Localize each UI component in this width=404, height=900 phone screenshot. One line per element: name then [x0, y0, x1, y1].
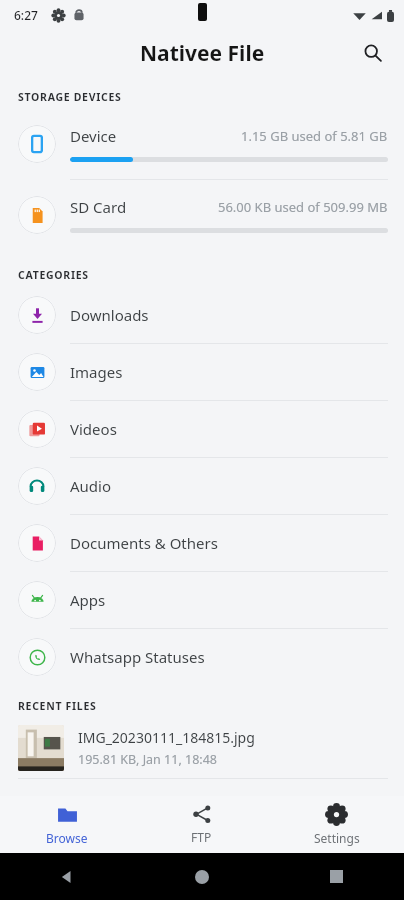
staticText: IMG_20230111_184815.jpg	[78, 728, 255, 747]
button[interactable]: Apps	[0, 572, 404, 628]
button[interactable]: Documents & Others	[0, 515, 404, 571]
staticText: Settings	[314, 830, 360, 846]
button[interactable]: Whatsapp Statuses	[0, 629, 404, 685]
staticText: Videos	[70, 419, 117, 439]
staticText: Nativee File	[140, 39, 265, 68]
staticText: Device	[70, 126, 117, 146]
staticText: 195.81 KB, Jan 11, 18:48	[78, 751, 217, 768]
staticText: CATEGORIES	[18, 268, 89, 282]
staticText: Apps	[70, 590, 106, 610]
button[interactable]: Images	[0, 344, 404, 400]
staticText: 6:27	[14, 7, 38, 23]
button[interactable]: Device	[0, 109, 404, 179]
staticText: 56.00 KB used of 509.99 MB	[218, 198, 388, 216]
staticText: 1.15 GB used of 5.81 GB	[241, 127, 388, 145]
button[interactable]: Browse	[0, 796, 134, 853]
button[interactable]: IMG_20230111_184815.jpg	[0, 718, 404, 778]
button[interactable]: SD Card	[0, 180, 404, 250]
staticText: Images	[70, 362, 123, 382]
staticText: Downloads	[70, 305, 149, 325]
button[interactable]: Search	[354, 34, 392, 72]
button[interactable]: Settings	[269, 796, 404, 853]
staticText: Documents & Others	[70, 533, 218, 553]
button[interactable]: Downloads	[0, 287, 404, 343]
staticText: RECENT FILES	[18, 699, 97, 713]
button[interactable]: Audio	[0, 458, 404, 514]
staticText: STORAGE DEVICES	[18, 90, 122, 104]
staticText: Whatsapp Statuses	[70, 647, 205, 667]
staticText: SD Card	[70, 197, 127, 217]
button[interactable]: FTP	[134, 796, 269, 853]
button[interactable]: Videos	[0, 401, 404, 457]
staticText: Audio	[70, 476, 112, 496]
staticText: FTP	[191, 829, 212, 845]
staticText: Browse	[46, 830, 88, 846]
